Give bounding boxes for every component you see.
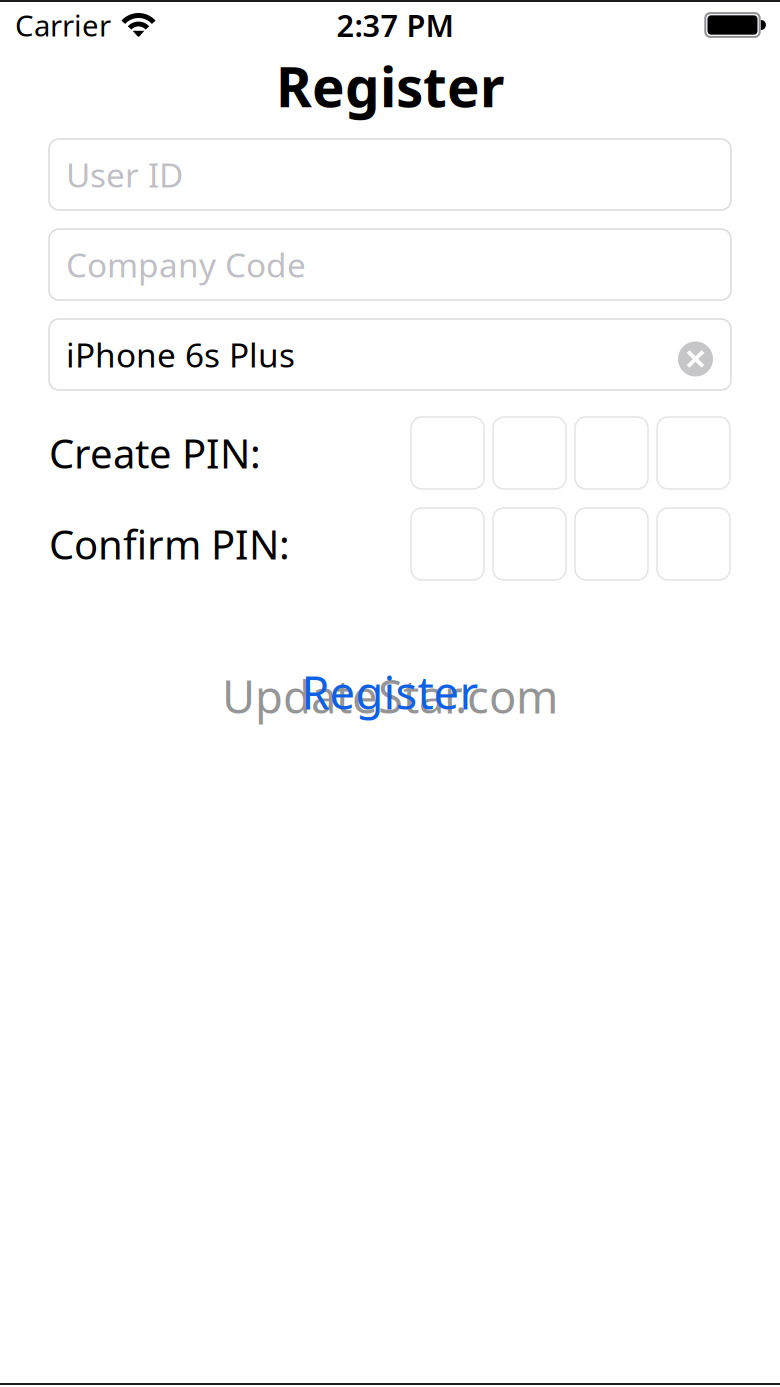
staticText: 2:37 PM (336, 5, 453, 45)
staticText: Create PIN: (49, 426, 261, 479)
button[interactable]: PIN digit (657, 508, 730, 580)
staticText: iPhone 6s Plus (66, 332, 295, 377)
button[interactable]: PIN digit (411, 417, 484, 489)
button[interactable]: PIN digit (493, 508, 566, 580)
button[interactable]: PIN digit (657, 417, 730, 489)
button[interactable]: PIN digit (575, 417, 648, 489)
staticText: Confirm PIN: (49, 517, 290, 570)
button[interactable]: PIN digit (575, 508, 648, 580)
staticText: UpdateStar.com (222, 666, 558, 726)
staticText: Carrier (15, 5, 111, 44)
staticText: User ID (66, 152, 183, 197)
button[interactable]: PIN digit (411, 508, 484, 580)
staticText: Register (276, 50, 504, 122)
button[interactable]: PIN digit (493, 417, 566, 489)
staticText: Register (301, 662, 478, 722)
button[interactable]: Clear text (678, 332, 713, 376)
button[interactable]: Company Code (49, 229, 731, 300)
button[interactable]: iPhone 6s Plus (49, 319, 731, 390)
staticText: Company Code (66, 242, 306, 287)
button[interactable]: Register (301, 662, 478, 730)
button[interactable]: User ID (49, 139, 731, 210)
